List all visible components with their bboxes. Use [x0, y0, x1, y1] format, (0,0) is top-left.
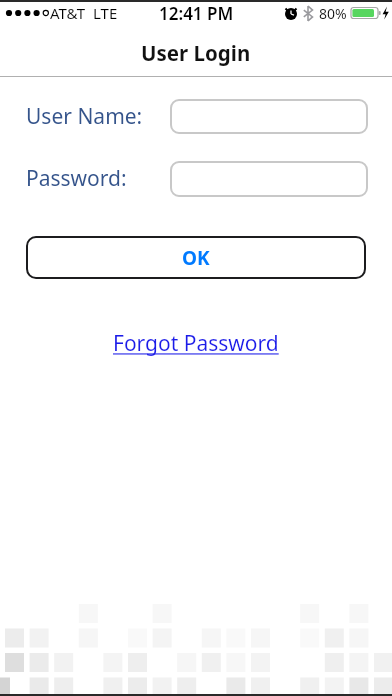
staticText: 80%	[319, 4, 347, 23]
staticText: 12:41 PM	[159, 2, 234, 25]
staticText: AT&T	[50, 3, 85, 23]
staticText: User Name:	[26, 102, 143, 131]
staticText: OK	[182, 245, 210, 271]
button[interactable]	[170, 99, 368, 134]
staticText: LTE	[93, 3, 118, 23]
staticText: Password:	[26, 164, 127, 193]
staticText: User Login	[141, 39, 251, 67]
button[interactable]: OK	[26, 236, 366, 279]
button[interactable]	[170, 161, 368, 197]
button[interactable]: Forgot Password	[113, 329, 279, 358]
